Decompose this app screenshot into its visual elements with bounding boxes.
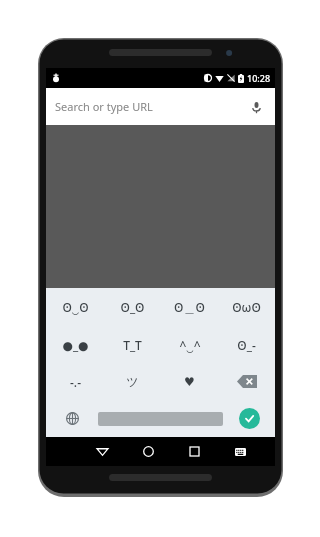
button[interactable]: Done (223, 400, 275, 437)
button[interactable]: ʘ_- (218, 326, 275, 363)
staticText: ●_● (62, 337, 89, 353)
staticText: ʘ＿ʘ (174, 299, 205, 315)
staticText: T_T (123, 337, 142, 353)
button[interactable]: ʘ＿ʘ (161, 288, 218, 326)
button[interactable]: Recent apps (171, 437, 217, 466)
staticText: 10:28 (247, 72, 271, 84)
staticText: -.- (70, 374, 81, 390)
staticText: ʘ‿ʘ (62, 299, 89, 315)
button[interactable]: Home (125, 437, 171, 466)
button[interactable]: Backspace (218, 363, 275, 400)
staticText: ツ (126, 374, 139, 389)
staticText: ʘ_ʘ (120, 299, 145, 315)
staticText: ♥ (184, 375, 195, 389)
button[interactable]: ʘωʘ (218, 288, 275, 326)
button[interactable]: ʘ_ʘ (104, 288, 161, 326)
button[interactable]: ♥ (161, 363, 218, 400)
button[interactable]: ʘ‿ʘ (46, 288, 104, 326)
button[interactable]: Voice search (246, 97, 266, 117)
staticText: ʘ_- (237, 337, 256, 353)
staticText: ʘωʘ (232, 299, 261, 315)
button[interactable]: ●_● (46, 326, 104, 363)
staticText: ^‿^ (179, 337, 201, 353)
button[interactable]: Hide keyboard (79, 437, 125, 466)
button[interactable]: -.- (46, 363, 104, 400)
staticText: Search or type URL (55, 99, 153, 114)
button[interactable]: Search or type URL (46, 88, 275, 125)
button[interactable]: ツ (104, 363, 161, 400)
button[interactable]: Switch language (46, 400, 98, 437)
button[interactable]: ^‿^ (161, 326, 218, 363)
button[interactable]: Change keyboard (217, 437, 263, 466)
button[interactable]: T_T (104, 326, 161, 363)
